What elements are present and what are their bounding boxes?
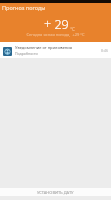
button[interactable]: Уведомление от приложения	[0, 42, 111, 58]
staticText: + 29	[44, 16, 69, 33]
staticText: Уведомление от приложения	[15, 45, 74, 50]
staticText: Прогноз погоды	[2, 4, 46, 11]
staticText: Сегодня ясная погода, +29 °C	[0, 32, 111, 37]
button[interactable]: УСТАНОВИТЬ ДАТУ	[0, 188, 111, 196]
staticText: Подробности	[15, 51, 38, 56]
staticText: УСТАНОВИТЬ ДАТУ	[37, 190, 74, 195]
staticText: °C	[69, 26, 75, 32]
staticText: 8:46	[101, 48, 108, 53]
